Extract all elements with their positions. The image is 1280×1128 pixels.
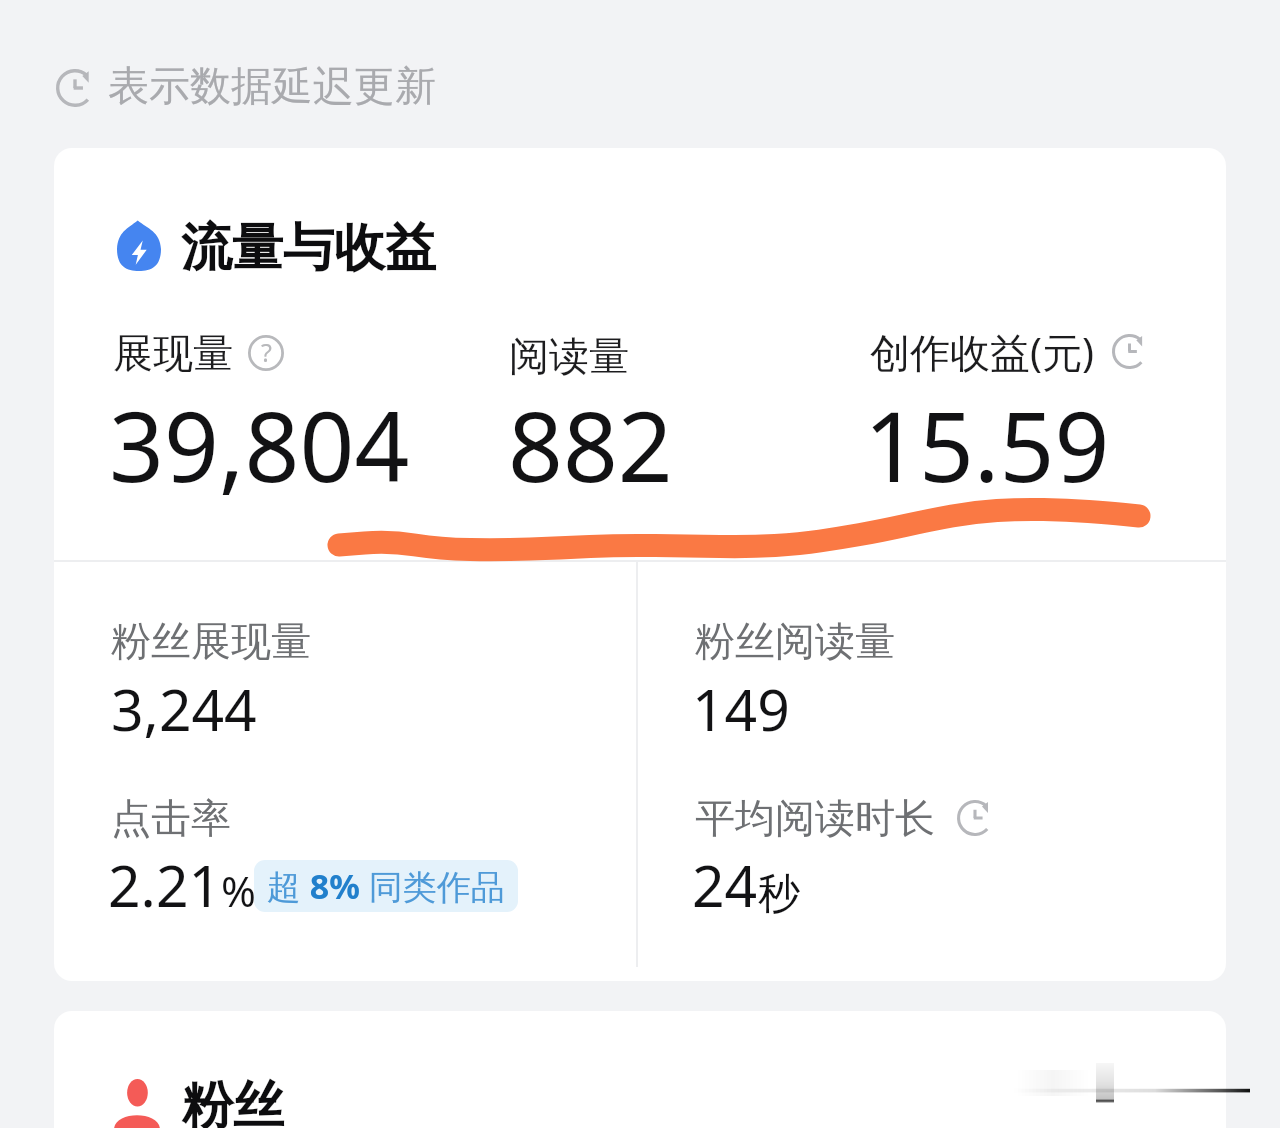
staticText: 3,244 [111,670,257,748]
staticText: 阅读量 [509,331,629,381]
staticText: 粉丝展现量 [111,616,311,666]
button[interactable]: 表示数据延迟更新 [56,62,436,114]
staticText: 15.59 [864,379,1110,510]
button[interactable]: 流量与收益 [54,148,1226,981]
staticText: 流量与收益 [181,216,436,280]
staticText: 秒 [758,868,800,921]
staticText: 粉丝阅读量 [695,616,895,666]
staticText: 2.21% [108,846,256,924]
staticText: 展现量 [113,328,233,378]
staticText: 882 [508,379,673,510]
staticText: 39,804 [109,379,410,510]
staticText: 149 [692,670,790,748]
button[interactable]: What is impressions? [248,335,284,371]
staticText: 点击率 [111,793,231,843]
staticText: ? [261,335,272,369]
staticText: 超 8% 同类作品 [267,863,505,909]
staticText: 创作收益(元) [870,324,1094,379]
button[interactable]: 超 8% 同类作品 [267,860,505,912]
staticText: 表示数据延迟更新 [108,61,436,113]
staticText: 平均阅读时长 [695,793,935,843]
staticText: 粉丝 [182,1074,284,1128]
staticText: 24 [692,846,758,924]
button[interactable]: 粉丝 [54,1011,1226,1128]
